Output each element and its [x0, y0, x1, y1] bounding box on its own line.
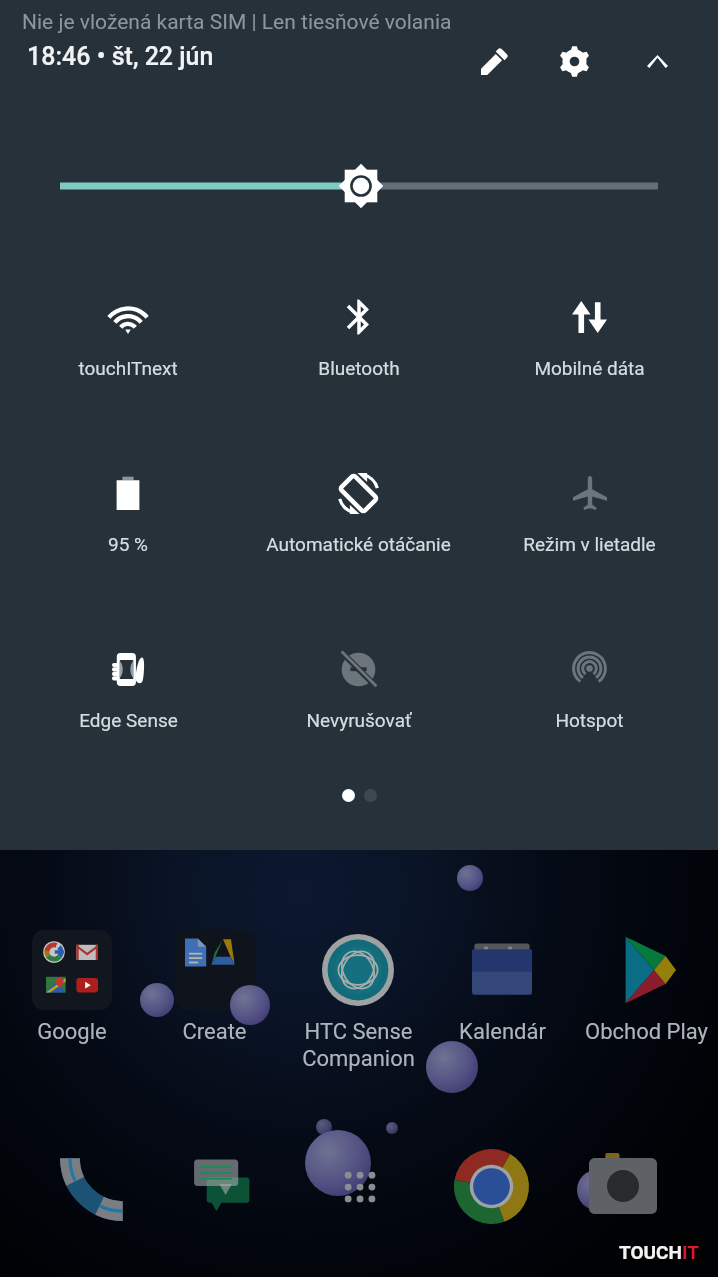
button[interactable]: Chrome: [425, 1146, 557, 1226]
button[interactable]: Brightness: [0, 152, 718, 220]
staticText: IT: [682, 1241, 700, 1263]
staticText: Mobilné dáta: [534, 357, 645, 379]
staticText: 95 %: [108, 533, 148, 555]
button[interactable]: Create: [143, 930, 286, 1100]
button[interactable]: All apps: [293, 1146, 425, 1226]
staticText: Režim v lietadle: [523, 533, 656, 555]
staticText: Google: [37, 1019, 107, 1045]
button[interactable]: Google: [0, 930, 143, 1100]
button[interactable]: Messages: [161, 1146, 293, 1226]
button[interactable]: Kalendár: [430, 930, 574, 1100]
staticText: Edge Sense: [79, 709, 178, 731]
staticText: Hotspot: [555, 709, 624, 731]
button[interactable]: Bluetooth: [243, 284, 474, 460]
button[interactable]: touchITnext: [13, 284, 243, 460]
button[interactable]: 95 %: [13, 460, 243, 636]
button[interactable]: Phone: [29, 1146, 161, 1226]
button[interactable]: Camera: [557, 1146, 689, 1226]
staticText: touchITnext: [78, 357, 178, 379]
button[interactable]: Collapse: [629, 33, 686, 90]
staticText: Create: [182, 1019, 247, 1045]
button[interactable]: Režim v lietadle: [474, 460, 705, 636]
staticText: 18:46 • št, 22 jún: [27, 42, 214, 71]
button[interactable]: Settings: [546, 33, 603, 90]
staticText: Bluetooth: [318, 357, 400, 379]
button[interactable]: Mobilné dáta: [474, 284, 705, 460]
staticText: HTC Sense Companion: [302, 1019, 415, 1072]
button[interactable]: Automatické otáčanie: [243, 460, 474, 636]
button[interactable]: Hotspot: [474, 636, 705, 812]
staticText: Nevyrušovať: [306, 709, 412, 731]
button[interactable]: Edge Sense: [13, 636, 243, 812]
button[interactable]: HTC Sense Companion: [286, 930, 430, 1100]
staticText: TOUCH: [619, 1241, 682, 1263]
button[interactable]: Edit quick settings: [466, 33, 523, 90]
button[interactable]: Obchod Play: [574, 930, 718, 1100]
staticText: Obchod Play: [585, 1019, 708, 1045]
staticText: Kalendár: [459, 1019, 546, 1045]
staticText: Nie je vložená karta SIM | Len tiesňové …: [22, 10, 452, 35]
staticText: Automatické otáčanie: [266, 533, 451, 555]
button[interactable]: Nevyrušovať: [243, 636, 474, 812]
